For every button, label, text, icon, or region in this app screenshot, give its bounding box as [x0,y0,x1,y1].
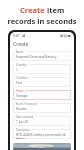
button[interactable]: Status [13,90,71,100]
staticText: Create [13,41,29,48]
staticText: Rooms [16,107,27,111]
staticText: Imperial Drum and Battery [16,55,57,59]
button[interactable]: Item photo [13,143,71,150]
staticText: item [47,5,65,15]
button[interactable]: Date acquired [13,116,71,126]
staticText: 1 [16,68,18,72]
staticText: Create [20,5,47,15]
staticText: Room / Enclosure [16,102,38,106]
staticText: Storage [16,94,28,98]
staticText: RTD-4240K surface prism with tilt fittin… [16,133,71,139]
staticText: Condition [16,76,28,80]
button[interactable]: Room / Enclosure [13,103,71,113]
staticText: Fine [16,81,23,85]
staticText: Date acquired [16,115,34,119]
staticText: Name [16,50,24,54]
staticText: Description [16,128,30,132]
button[interactable]: Name [13,51,71,61]
staticText: 1 Jun 20 [16,120,28,124]
button[interactable]: Description [13,129,71,139]
button[interactable]: Quantity [13,64,71,74]
staticText: 9:41 [13,34,20,38]
staticText: Status [16,89,24,93]
staticText: Quantity [16,63,27,67]
staticText: records in seconds [7,16,77,26]
button[interactable]: Condition [13,77,71,87]
